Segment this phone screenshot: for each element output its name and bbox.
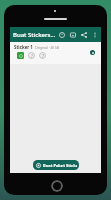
staticText: Buat Paket Sticker [43,163,77,168]
button[interactable]: Buat Paket Sticker [33,160,79,170]
staticText: ? [31,53,33,59]
button[interactable]: Sticker 1 image [17,52,24,59]
staticText: Sticker 1 [14,44,33,50]
staticText: Buat Stickers... [13,31,56,39]
button[interactable]: Share [78,28,89,41]
staticText: Original · 40 kB [35,45,60,50]
button[interactable]: Sync [56,28,67,41]
button[interactable]: Add sticker [28,52,35,59]
button[interactable]: More options [89,28,100,41]
button[interactable]: Gallery [67,28,78,41]
staticText: ? [42,53,44,59]
button[interactable]: Add sticker [39,52,46,59]
button[interactable]: Home [51,180,63,192]
button[interactable]: Add sticker pack [90,50,95,55]
